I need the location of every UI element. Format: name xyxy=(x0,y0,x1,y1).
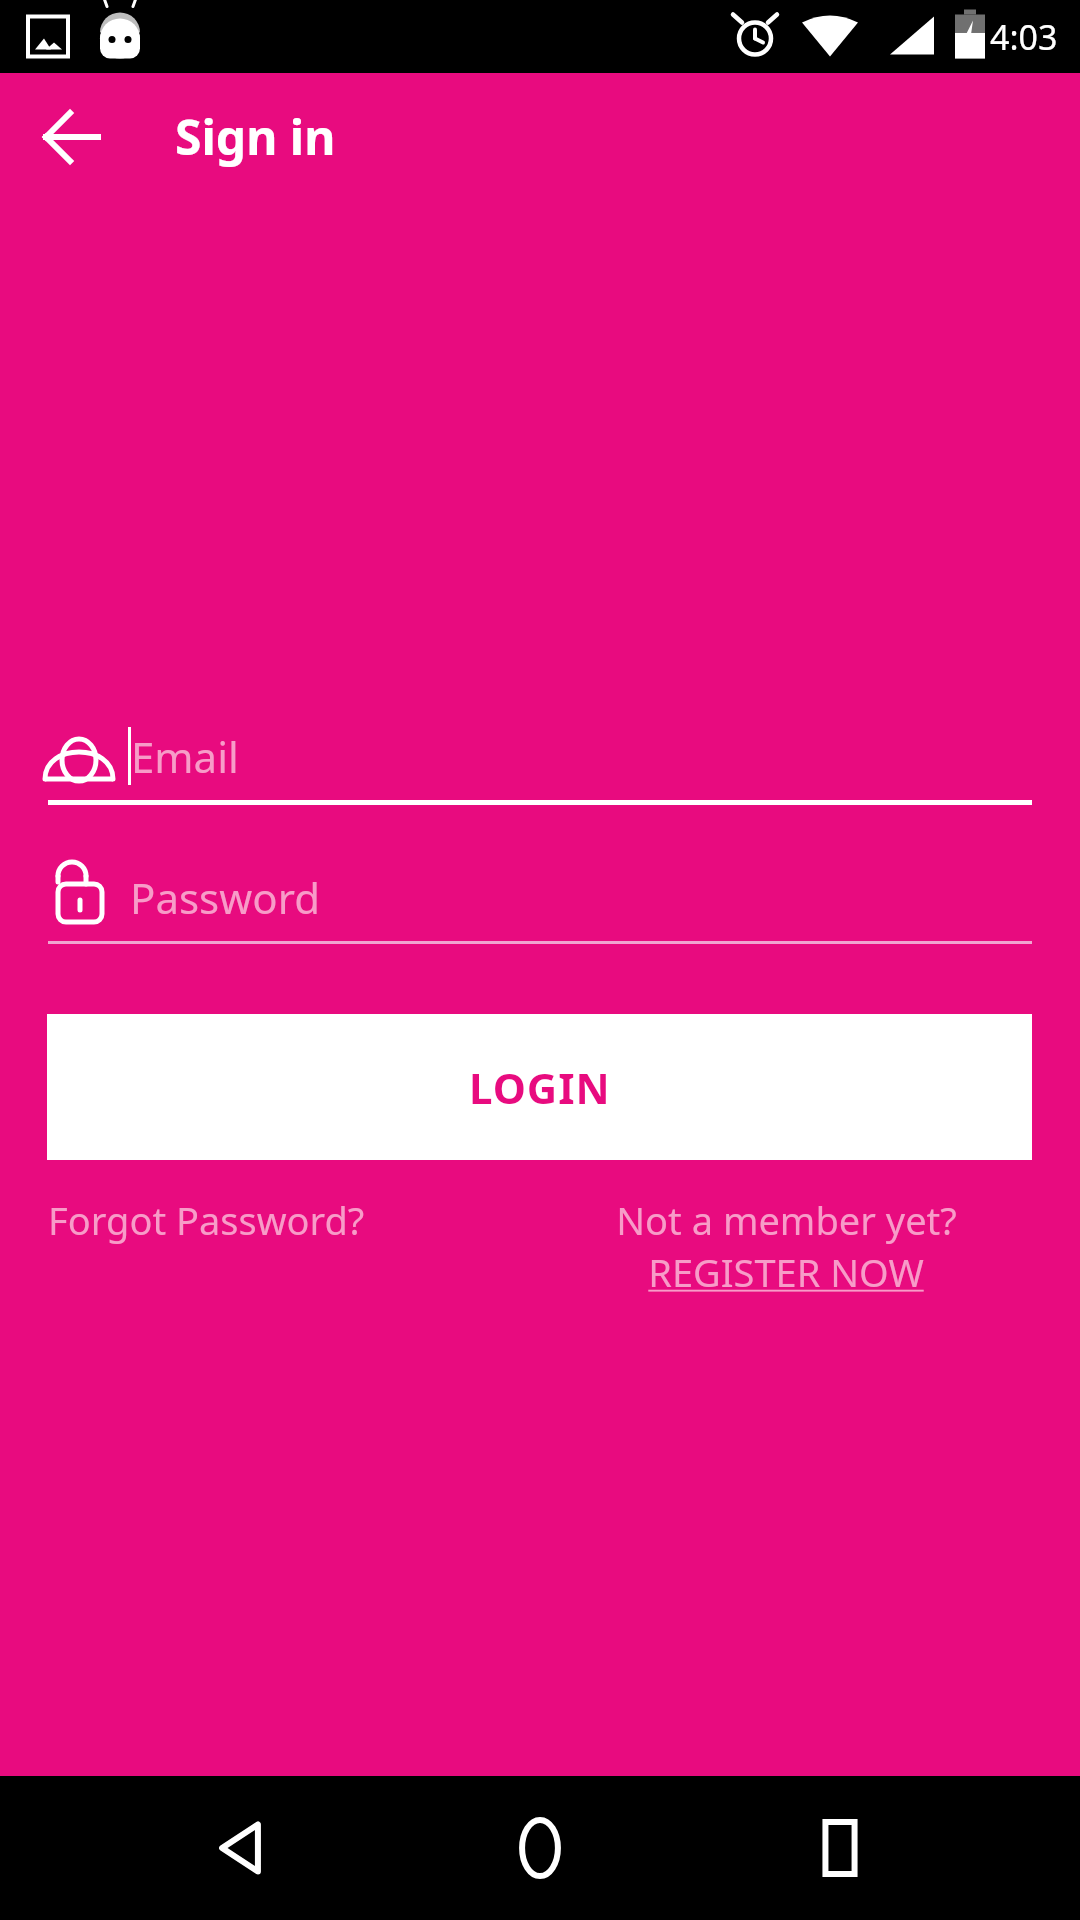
staticText: REGISTER NOW xyxy=(648,1246,924,1298)
button[interactable]: Email xyxy=(48,720,1032,805)
staticText: 4:03 xyxy=(990,14,1058,60)
staticText: Forgot Password? xyxy=(48,1194,365,1246)
button[interactable]: Forgot Password? xyxy=(48,1194,540,1246)
button[interactable]: Password xyxy=(48,861,1032,944)
button[interactable]: Back xyxy=(180,1788,300,1908)
staticText: Password xyxy=(130,869,320,926)
button[interactable]: Recent apps xyxy=(780,1788,900,1908)
staticText: Not a member yet? xyxy=(616,1194,957,1246)
staticText: Email xyxy=(131,728,239,785)
button[interactable]: LOGIN xyxy=(47,1014,1032,1160)
button[interactable]: Not a member yet? xyxy=(540,1194,1032,1298)
button[interactable]: Home xyxy=(480,1788,600,1908)
staticText: Sign in xyxy=(175,104,336,169)
staticText: LOGIN xyxy=(469,1059,611,1116)
button[interactable]: Back xyxy=(30,95,114,179)
